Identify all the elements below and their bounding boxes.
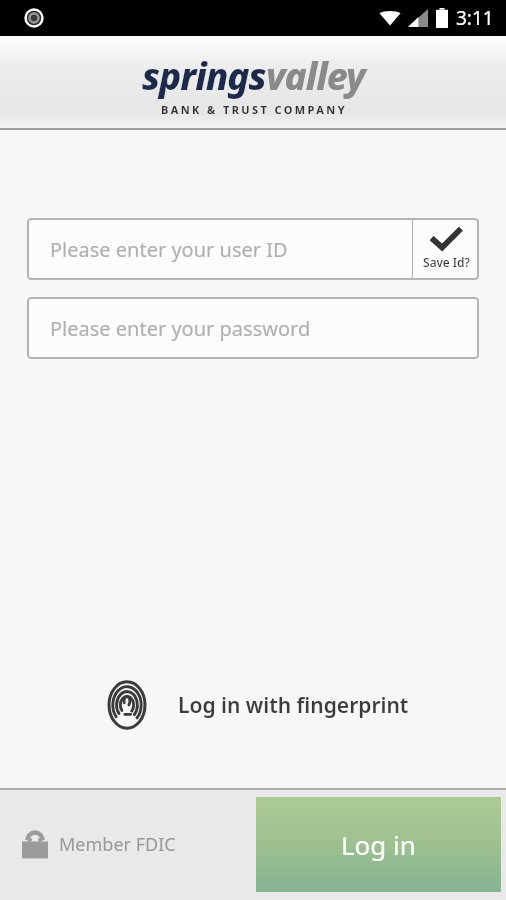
button[interactable]: Member FDIC [22,828,176,860]
button[interactable]: Please enter your user ID [27,218,412,280]
staticText: springs [142,50,266,100]
button[interactable]: Log in [256,797,501,892]
staticText: 3:11 [456,5,494,31]
staticText: Member FDIC [59,832,176,857]
button[interactable]: Log in with fingerprint [0,668,506,742]
staticText: Please enter your password [50,315,311,342]
staticText: Log in [341,827,416,862]
staticText: valley [266,50,365,100]
button[interactable]: Save Id [413,218,479,280]
staticText: Log in with fingerprint [178,691,409,720]
button[interactable]: Please enter your password [27,297,479,359]
staticText: BANK & TRUST COMPANY [161,102,347,117]
staticText: Please enter your user ID [50,236,288,263]
staticText: Save Id? [423,254,470,270]
